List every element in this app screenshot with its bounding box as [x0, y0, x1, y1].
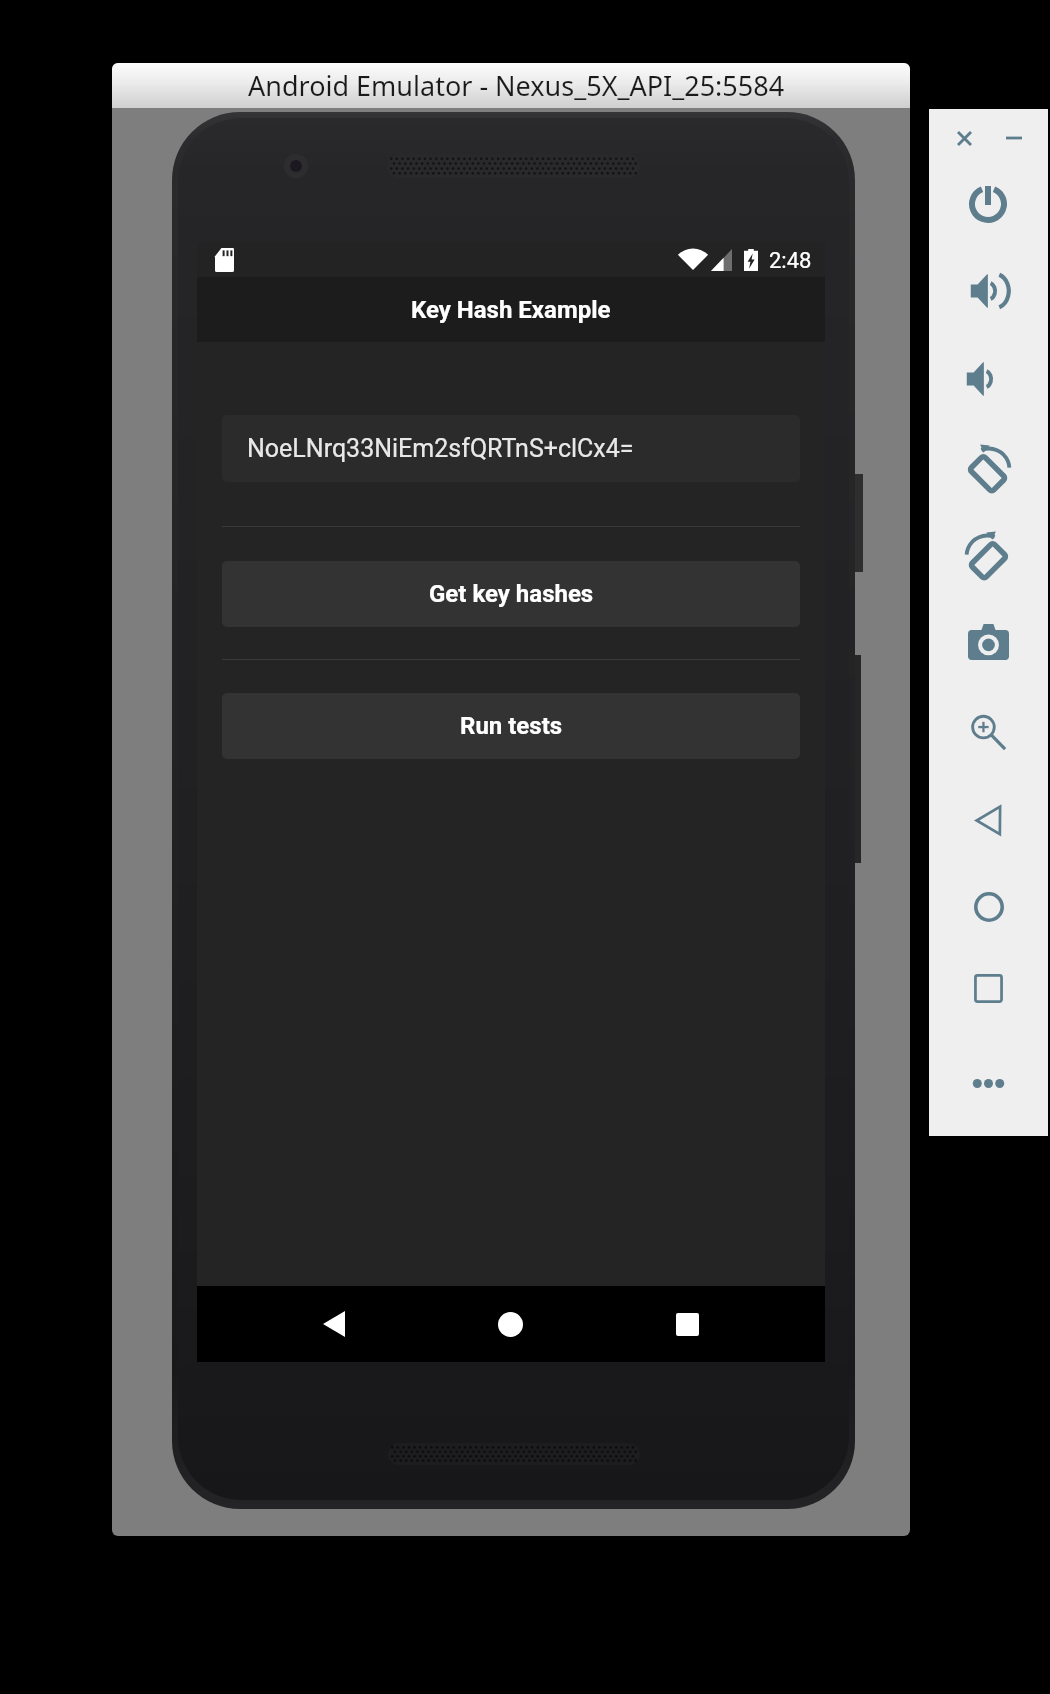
button[interactable]: Recents [599, 1286, 776, 1362]
button[interactable]: Zoom [958, 702, 1018, 762]
button[interactable]: Minimize [984, 108, 1044, 168]
staticText: Get key hashes [429, 580, 594, 608]
button[interactable]: Power [958, 174, 1018, 234]
staticText: NoeLNrq33NiEm2sfQRTnS+clCx4= [247, 434, 634, 463]
button[interactable]: Rotate right [957, 525, 1017, 585]
button[interactable]: Overview [958, 958, 1018, 1018]
staticText: Key Hash Example [411, 296, 611, 324]
staticText: 2:48 [769, 248, 812, 274]
button[interactable]: Home [422, 1286, 599, 1362]
button[interactable]: Volume down [955, 349, 1015, 409]
button[interactable]: Home [959, 877, 1019, 937]
button[interactable]: Take screenshot [958, 612, 1018, 672]
button[interactable]: Back [958, 790, 1018, 850]
button[interactable]: More [958, 1053, 1018, 1113]
staticText: Android Emulator - Nexus_5X_API_25:5584 [248, 67, 785, 104]
button[interactable]: Back [246, 1286, 422, 1362]
staticText: Run tests [460, 712, 563, 740]
button[interactable]: Close [934, 108, 994, 168]
button[interactable]: Get key hashes [222, 561, 800, 627]
button[interactable]: NoeLNrq33NiEm2sfQRTnS+clCx4= [222, 415, 800, 482]
button[interactable]: Run tests [222, 693, 800, 759]
button[interactable]: Volume up [959, 261, 1019, 321]
button[interactable]: Rotate left [959, 438, 1019, 498]
